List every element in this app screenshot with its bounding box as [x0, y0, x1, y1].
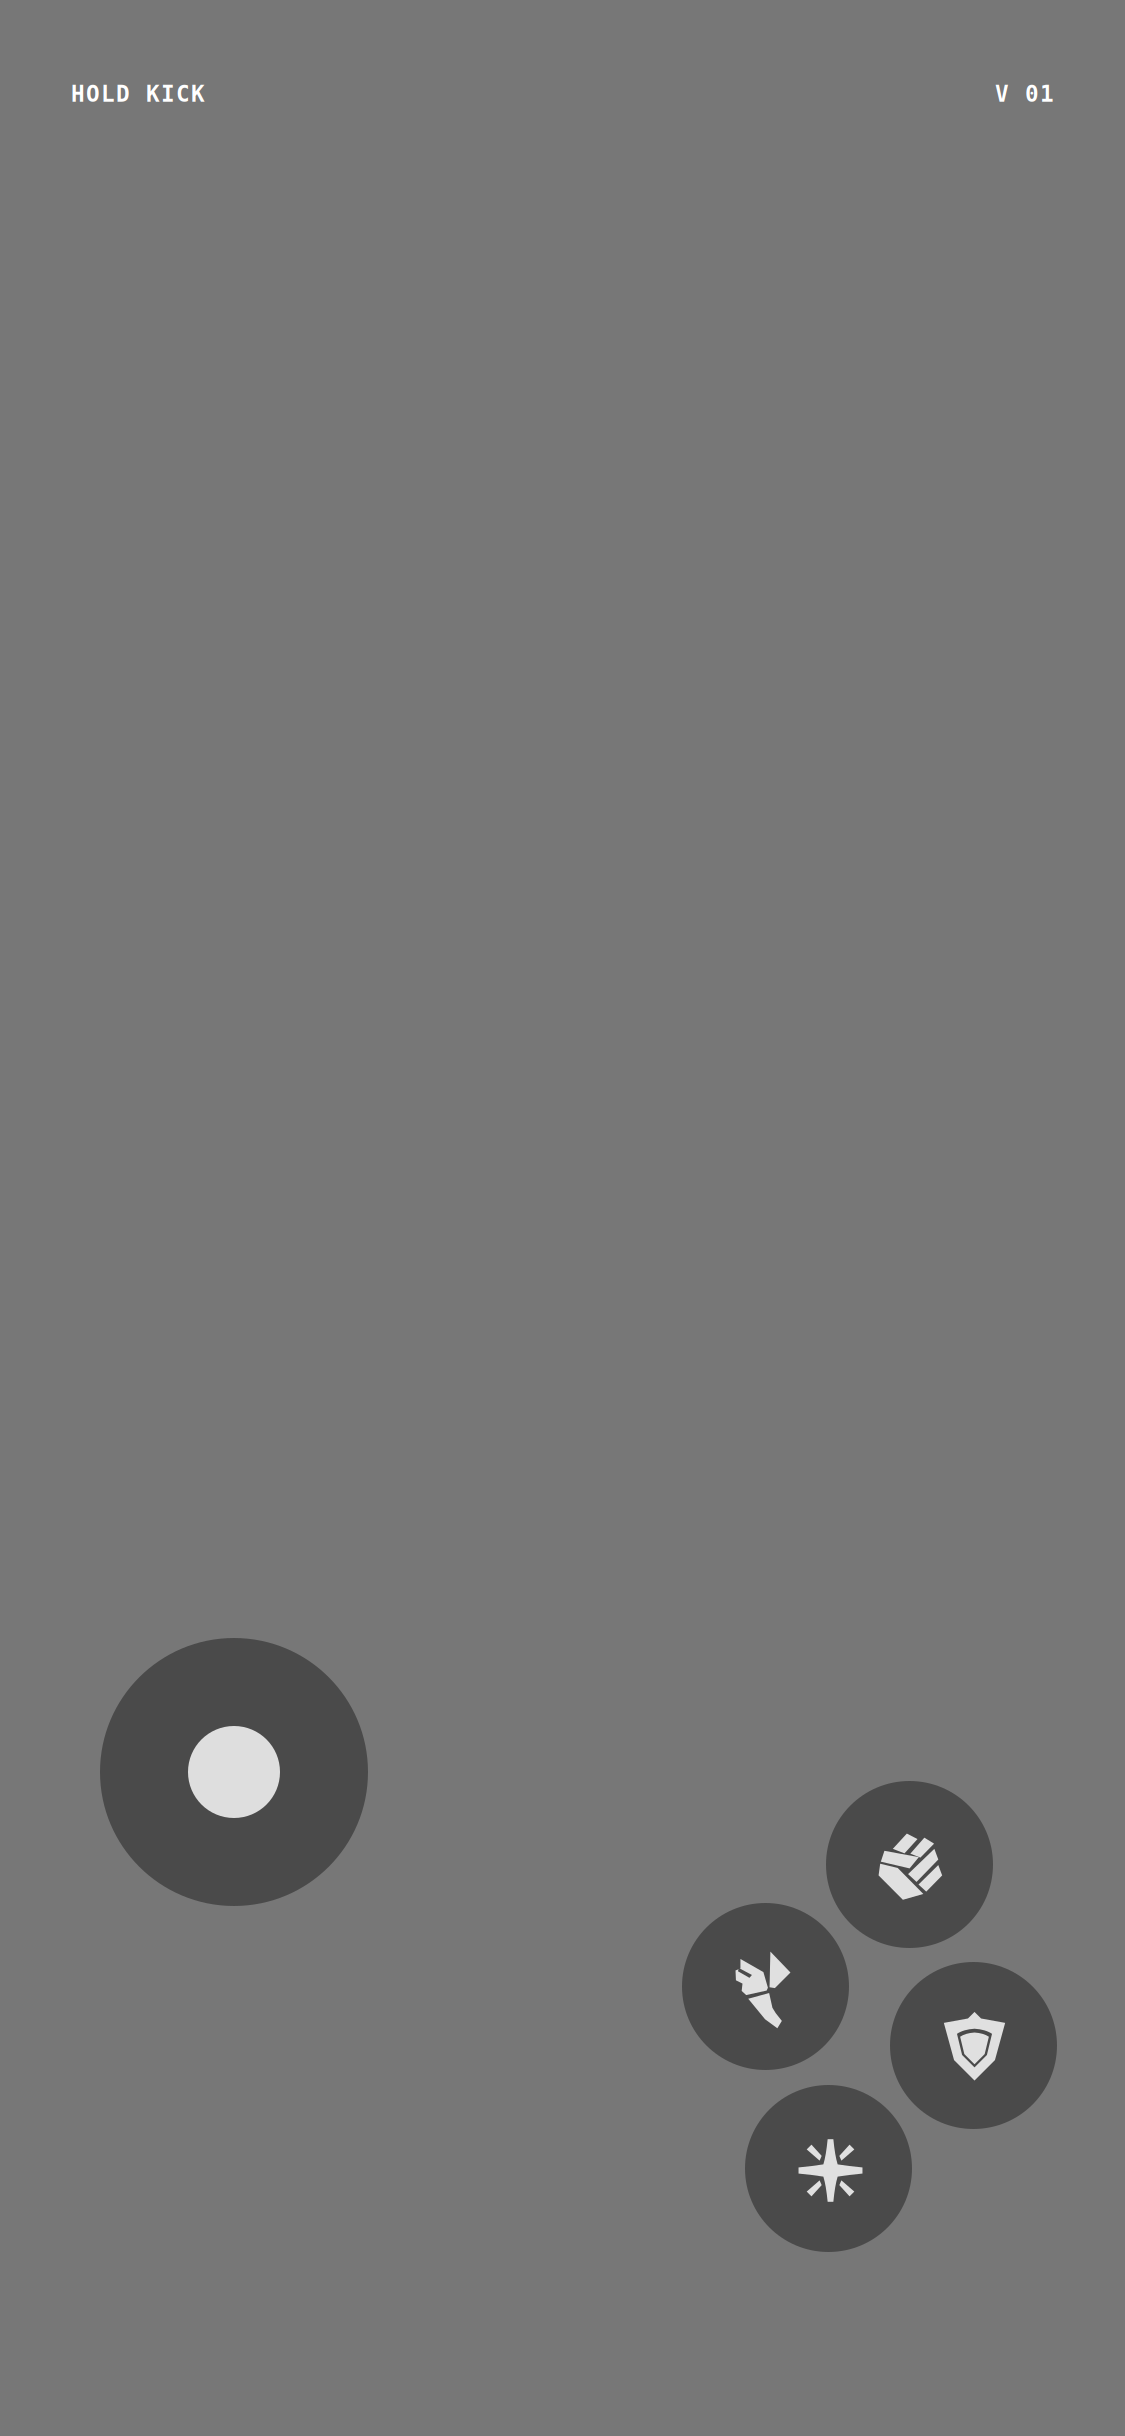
button[interactable]: Kick	[682, 1903, 849, 2070]
button[interactable]: Movement stick	[100, 1638, 368, 1906]
button[interactable]: Block	[890, 1962, 1057, 2129]
staticText: HOLD KICK	[71, 81, 205, 107]
button[interactable]: Special	[745, 2085, 912, 2252]
button[interactable]: Punch	[826, 1781, 993, 1948]
staticText: V 01	[995, 81, 1054, 107]
